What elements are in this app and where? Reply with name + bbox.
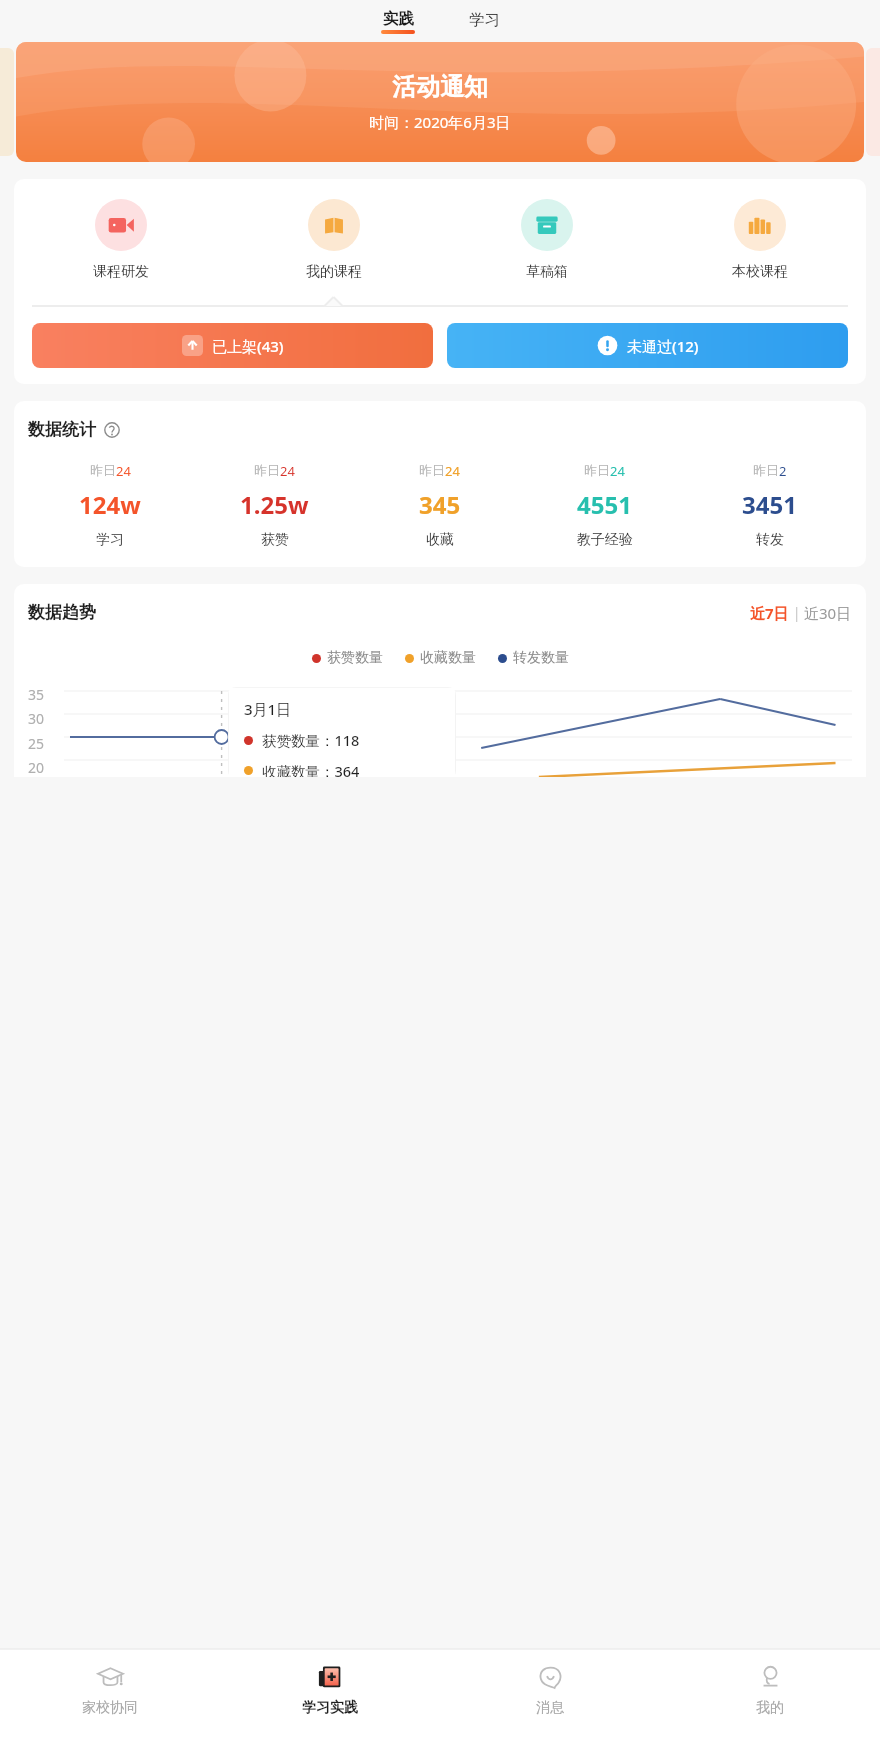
staticText: 已上架(43) <box>212 336 284 356</box>
staticText: 学习 <box>96 531 124 549</box>
button[interactable]: 课程研发 <box>14 195 227 285</box>
button[interactable]: 未通过(12) <box>447 323 848 368</box>
button[interactable]: 帮助 <box>103 421 121 439</box>
staticText: 实践 <box>383 9 414 29</box>
button[interactable]: 实践 <box>373 9 423 34</box>
staticText: 24 <box>610 462 625 480</box>
button[interactable]: 昨日 <box>28 462 192 549</box>
staticText: 24 <box>280 462 295 480</box>
staticText: 1.25w <box>240 488 309 521</box>
staticText: 学习 <box>469 10 500 30</box>
staticText: 未通过(12) <box>627 336 699 356</box>
staticText: 课程研发 <box>93 263 149 281</box>
staticText: 124w <box>79 488 141 521</box>
staticText: 20 <box>28 758 45 777</box>
staticText: 转发数量 <box>513 649 569 667</box>
staticText: 25 <box>28 734 45 753</box>
button[interactable]: 活动通知 <box>16 42 864 162</box>
button[interactable]: 昨日 <box>192 462 357 549</box>
staticText: 昨日 <box>419 462 445 478</box>
staticText: 数据趋势 <box>28 602 96 623</box>
button[interactable]: 草稿箱 <box>440 195 653 285</box>
staticText: 时间：2020年6月3日 <box>369 112 511 132</box>
button[interactable]: 昨日 <box>687 462 852 549</box>
staticText: 345 <box>419 488 461 521</box>
staticText: 4551 <box>577 488 632 521</box>
staticText: 3月1日 <box>244 699 292 719</box>
button[interactable]: 近30日 <box>804 603 852 623</box>
button[interactable]: 昨日 <box>357 462 522 549</box>
staticText: 24 <box>116 462 131 480</box>
staticText: 近7日 <box>750 603 789 623</box>
staticText: 教子经验 <box>577 531 633 549</box>
staticText: 草稿箱 <box>526 263 568 281</box>
staticText: 昨日 <box>753 462 779 478</box>
staticText: 家校协同 <box>82 1699 138 1717</box>
staticText: 我的课程 <box>306 263 362 281</box>
staticText: 收藏数量 <box>420 649 476 667</box>
staticText: 获赞数量 <box>327 649 383 667</box>
button[interactable]: 家校协同 <box>0 1659 220 1721</box>
staticText: 活动通知 <box>392 72 488 102</box>
staticText: 我的 <box>756 1699 784 1717</box>
button[interactable]: 本校课程 <box>653 195 866 285</box>
staticText: 转发 <box>756 531 784 549</box>
staticText: 30 <box>28 709 45 728</box>
button[interactable]: 学习实践 <box>220 1659 440 1721</box>
button[interactable]: 近7日 <box>750 603 789 623</box>
staticText: 昨日 <box>90 462 116 478</box>
staticText: 2 <box>779 462 787 480</box>
staticText: | <box>789 603 804 622</box>
staticText: 消息 <box>536 1699 564 1717</box>
staticText: 本校课程 <box>732 263 788 281</box>
staticText: 昨日 <box>254 462 280 478</box>
staticText: 3451 <box>742 488 797 521</box>
staticText: 收藏 <box>426 531 454 549</box>
staticText: 数据统计 <box>28 419 96 440</box>
button[interactable]: 我的课程 <box>227 195 440 285</box>
staticText: 获赞数量：118 <box>262 730 360 750</box>
staticText: 昨日 <box>584 462 610 478</box>
staticText: 收藏数量：364 <box>262 761 360 777</box>
staticText: 近30日 <box>804 603 852 623</box>
button[interactable]: 学习 <box>461 12 508 32</box>
staticText: 35 <box>28 685 45 704</box>
button[interactable]: 昨日 <box>522 462 687 549</box>
staticText: 24 <box>445 462 460 480</box>
button[interactable]: 我的 <box>660 1659 880 1721</box>
staticText: 获赞 <box>261 531 289 549</box>
button[interactable]: 已上架(43) <box>32 323 433 368</box>
staticText: 学习实践 <box>302 1699 358 1717</box>
button[interactable]: 消息 <box>440 1659 660 1721</box>
